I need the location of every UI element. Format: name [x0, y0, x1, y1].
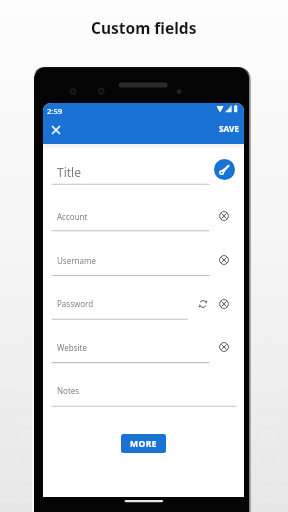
button[interactable]: Clear — [217, 297, 231, 311]
button[interactable]: Clear — [217, 340, 231, 354]
staticText: Website — [57, 342, 88, 353]
staticText: Account — [57, 211, 88, 222]
button[interactable]: MORE — [121, 434, 166, 453]
button[interactable]: Edit — [214, 159, 235, 180]
staticText: SAVE — [219, 123, 240, 134]
staticText: 2:59 — [47, 106, 63, 116]
button[interactable]: SAVE — [219, 120, 240, 136]
button[interactable]: Generate password — [196, 297, 210, 311]
staticText: Username — [57, 255, 96, 266]
button[interactable]: Clear — [217, 253, 231, 267]
staticText: Notes — [57, 385, 80, 396]
staticText: MORE — [130, 438, 158, 450]
staticText: Custom fields — [91, 17, 197, 38]
staticText: Password — [57, 298, 94, 309]
button[interactable]: Close — [47, 121, 65, 139]
staticText: Title — [57, 164, 81, 180]
button[interactable]: Clear — [217, 209, 231, 223]
